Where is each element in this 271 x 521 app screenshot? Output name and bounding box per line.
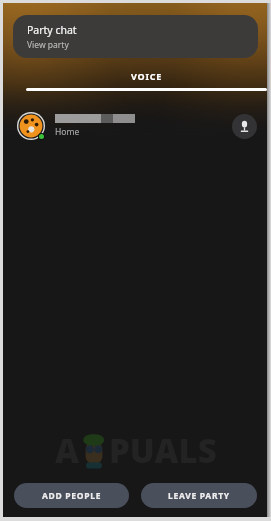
staticText: LEAVE PARTY bbox=[168, 490, 230, 502]
staticText: A bbox=[55, 428, 79, 473]
staticText: Home bbox=[55, 126, 80, 138]
button[interactable]: Home bbox=[0, 106, 271, 146]
staticText: PUALS bbox=[109, 428, 217, 473]
button[interactable]: LEAVE PARTY bbox=[141, 483, 257, 508]
button[interactable]: ADD PEOPLE bbox=[14, 483, 129, 508]
button[interactable]: Mute microphone bbox=[232, 114, 257, 139]
staticText: View party bbox=[27, 39, 69, 51]
staticText: Party chat bbox=[27, 23, 77, 37]
staticText: VOICE bbox=[131, 70, 163, 82]
button[interactable]: VOICE bbox=[22, 68, 271, 93]
button[interactable]: Party chat bbox=[13, 15, 258, 58]
staticText: ADD PEOPLE bbox=[42, 490, 102, 502]
